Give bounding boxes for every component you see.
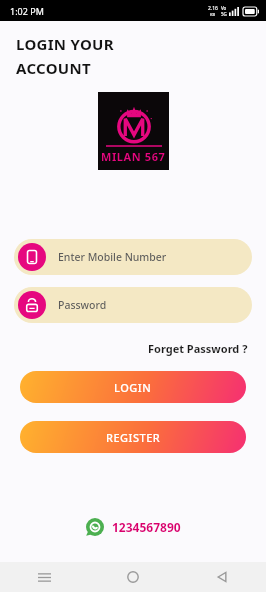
staticText: 2.16 xyxy=(208,5,218,12)
staticText: Password xyxy=(58,298,107,312)
button[interactable]: LOGIN xyxy=(20,371,246,403)
button[interactable]: WhatsApp xyxy=(0,512,266,542)
button[interactable]: REGISTER xyxy=(20,421,246,453)
staticText: Enter Mobile Number xyxy=(58,250,167,264)
staticText: 1:02 PM xyxy=(10,5,44,17)
button[interactable]: Home xyxy=(88,562,177,592)
button[interactable]: Recent apps xyxy=(0,562,88,592)
staticText: 1234567890 xyxy=(112,519,181,535)
staticText: KB xyxy=(210,12,216,17)
button[interactable]: Enter Mobile Number xyxy=(14,239,252,275)
staticText: Vo xyxy=(221,5,227,11)
staticText: REGISTER xyxy=(106,430,161,445)
staticText: LOGIN xyxy=(114,380,152,395)
staticText: LOGIN YOUR xyxy=(16,34,114,54)
button[interactable]: Password xyxy=(14,287,252,323)
button[interactable]: Back xyxy=(177,562,266,592)
staticText: MILAN 567 xyxy=(101,149,166,164)
other: WhatsApp xyxy=(86,518,104,536)
button[interactable]: Forget Password ? xyxy=(144,337,252,360)
staticText: ACCOUNT xyxy=(16,58,91,78)
staticText: 5G xyxy=(221,11,227,17)
